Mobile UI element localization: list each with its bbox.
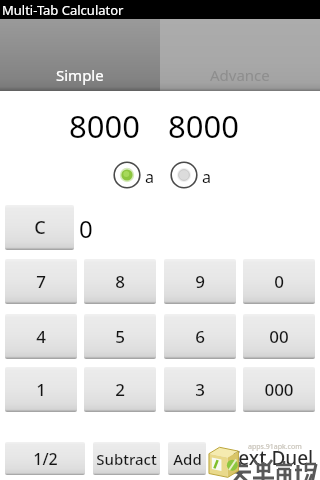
staticText: Subtract — [96, 449, 157, 469]
staticText: 8 — [115, 270, 125, 293]
button[interactable]: 8 — [84, 259, 156, 304]
staticText: 00 — [269, 325, 289, 348]
staticText: 6 — [195, 325, 205, 348]
staticText: Add — [173, 449, 202, 469]
button[interactable]: 00 — [243, 314, 315, 359]
button[interactable]: 1/2 — [5, 442, 85, 475]
staticText: 1/2 — [33, 448, 58, 470]
staticText: 3 — [195, 378, 205, 401]
staticText: a — [202, 166, 211, 188]
button[interactable]: Add — [168, 442, 206, 475]
button[interactable]: 000 — [243, 367, 315, 412]
staticText: Advance — [210, 65, 270, 85]
button[interactable]: 9 — [164, 259, 236, 304]
staticText: 9 — [195, 270, 205, 293]
button[interactable]: C — [5, 205, 74, 250]
staticText: 000 — [264, 378, 294, 401]
button[interactable]: Advance — [160, 19, 320, 91]
button[interactable]: 1 — [5, 367, 77, 412]
staticText: Simple — [56, 65, 104, 85]
staticText: 1 — [36, 378, 46, 401]
staticText: 2 — [115, 378, 125, 401]
button[interactable]: 6 — [164, 314, 236, 359]
staticText: 4 — [36, 325, 46, 348]
button[interactable]: Advertisement: Text Duel — [206, 438, 320, 480]
staticText: apps.91apk.com — [248, 442, 302, 452]
staticText: 0 — [79, 212, 93, 245]
staticText: 0 — [274, 270, 284, 293]
staticText: 8000 — [168, 105, 239, 147]
staticText: 8000 — [69, 105, 140, 147]
staticText: Text Duel — [229, 445, 314, 471]
staticText: Multi-Tab Calculator — [2, 1, 124, 19]
button[interactable]: Subtract — [93, 442, 160, 475]
button[interactable]: Option a — [170, 161, 216, 191]
button[interactable]: 3 — [164, 367, 236, 412]
button[interactable]: 2 — [84, 367, 156, 412]
button[interactable]: Option a selected — [113, 161, 159, 191]
staticText: 7 — [36, 270, 46, 293]
button[interactable]: Simple — [0, 19, 160, 91]
button[interactable]: 0 — [243, 259, 315, 304]
staticText: C — [34, 215, 46, 240]
button[interactable]: 7 — [5, 259, 77, 304]
button[interactable]: 4 — [5, 314, 77, 359]
button[interactable]: 5 — [84, 314, 156, 359]
staticText: a — [145, 166, 154, 188]
staticText: 5 — [115, 325, 125, 348]
